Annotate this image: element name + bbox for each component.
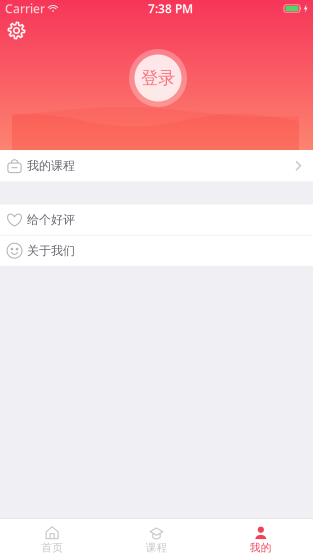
button[interactable]: 关于我们 xyxy=(0,235,313,266)
staticText: 7:38 PM xyxy=(148,0,193,16)
button[interactable]: 我的课程 xyxy=(0,150,313,181)
button[interactable]: Settings xyxy=(1,15,32,46)
staticText: 给个好评 xyxy=(27,212,75,227)
staticText: 首页 xyxy=(41,541,63,554)
staticText: 关于我们 xyxy=(27,243,75,258)
staticText: Carrier xyxy=(5,0,45,16)
staticText: 登录 xyxy=(141,67,175,89)
button[interactable]: 课程 xyxy=(104,517,209,556)
staticText: 课程 xyxy=(145,541,167,554)
staticText: 我的课程 xyxy=(27,158,75,173)
staticText: 我的 xyxy=(250,541,272,554)
button[interactable]: 首页 xyxy=(0,517,104,556)
button[interactable]: 给个好评 xyxy=(0,204,313,235)
button[interactable]: 我的 xyxy=(209,517,313,556)
button[interactable]: 登录 xyxy=(129,49,187,107)
